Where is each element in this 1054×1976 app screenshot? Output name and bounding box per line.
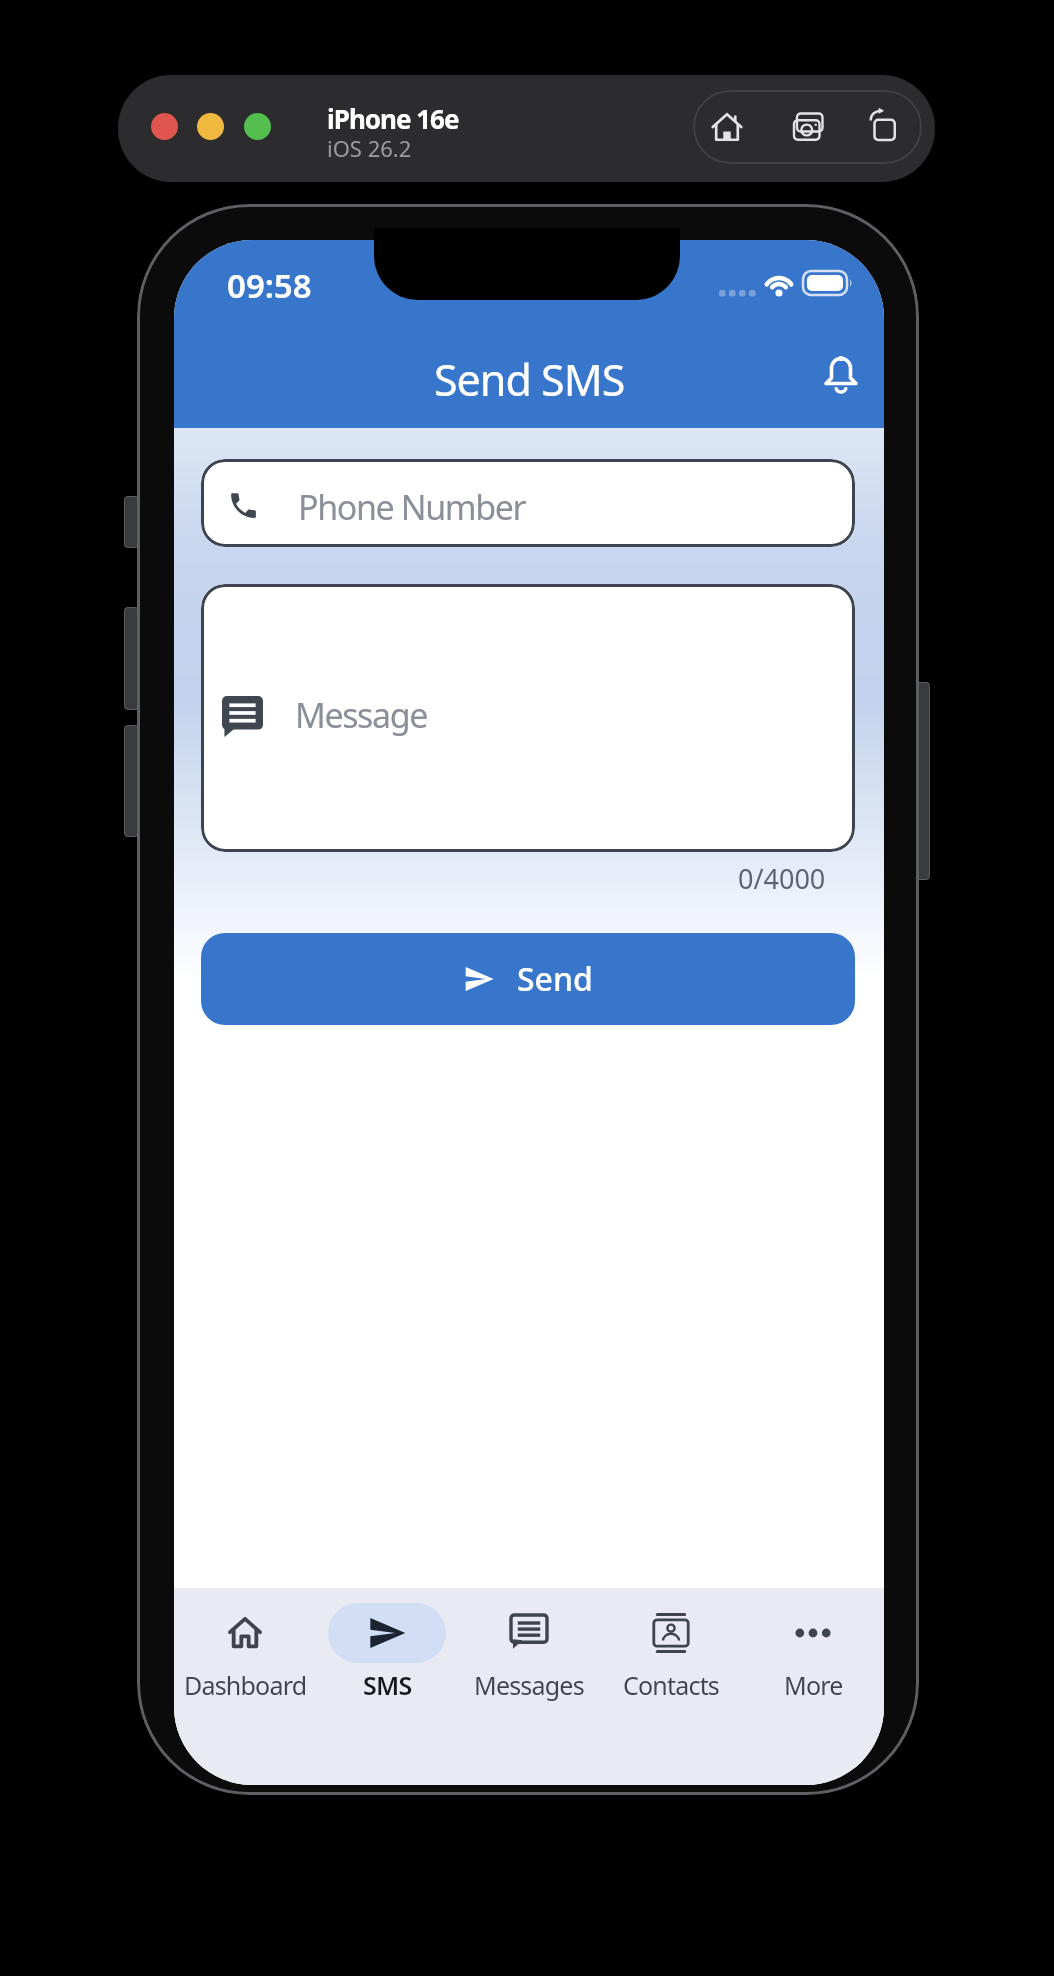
staticText: Messages xyxy=(474,1668,584,1702)
staticText: Send SMS xyxy=(434,350,625,409)
staticText: iOS 26.2 xyxy=(327,133,412,163)
staticText: Phone Number xyxy=(298,484,526,530)
staticText: iPhone 16e xyxy=(327,101,459,136)
staticText: Dashboard xyxy=(184,1668,307,1702)
staticText: Send xyxy=(517,957,593,1001)
button[interactable]: Send xyxy=(201,933,855,1025)
button[interactable]: More xyxy=(742,1588,884,1785)
button[interactable]: SMS xyxy=(316,1588,458,1785)
button[interactable] xyxy=(864,107,900,143)
staticText: Contacts xyxy=(623,1668,720,1702)
button[interactable]: Contacts xyxy=(600,1588,742,1785)
staticText: 0/4000 xyxy=(738,860,826,897)
button[interactable] xyxy=(820,356,862,398)
staticText: More xyxy=(784,1668,843,1702)
button[interactable]: Dashboard xyxy=(174,1588,316,1785)
button[interactable]: Phone Number xyxy=(201,459,855,547)
button[interactable] xyxy=(791,109,827,145)
button[interactable]: Messages xyxy=(458,1588,600,1785)
button[interactable] xyxy=(709,109,745,145)
staticText: 09:58 xyxy=(227,263,312,308)
staticText: SMS xyxy=(363,1668,412,1702)
button[interactable]: Message xyxy=(201,584,855,852)
staticText: Message xyxy=(295,692,427,738)
